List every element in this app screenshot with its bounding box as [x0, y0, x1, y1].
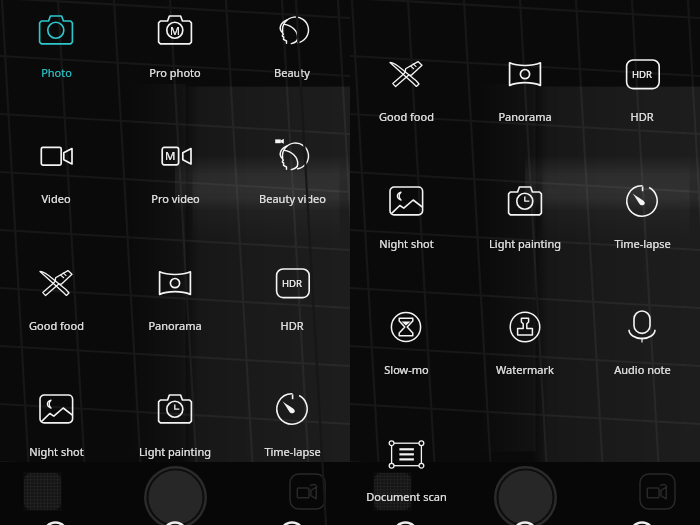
button[interactable]: Gallery [24, 473, 61, 510]
staticText: Photo [41, 65, 72, 80]
button[interactable]: Time-lapse [237, 383, 347, 462]
button[interactable]: HDR [587, 48, 697, 127]
button[interactable]: Switch to video [290, 474, 325, 509]
staticText: Beauty [274, 65, 310, 80]
staticText: Audio note [614, 362, 671, 377]
staticText: Light painting [489, 236, 561, 251]
button[interactable]: HDR [237, 257, 347, 336]
button[interactable]: Gallery [374, 473, 411, 510]
button[interactable]: Light painting [120, 383, 230, 462]
staticText: HDR [632, 68, 652, 81]
staticText: Video [41, 191, 71, 206]
button[interactable]: Beauty [237, 4, 347, 83]
button[interactable]: Good food [351, 48, 461, 127]
staticText: Pro photo [149, 65, 201, 80]
button[interactable]: Photo [1, 4, 111, 83]
button[interactable]: Night shot [1, 383, 111, 462]
staticText: Pro video [151, 191, 200, 206]
button[interactable]: Night shot [351, 175, 461, 254]
button[interactable]: Panorama [470, 48, 580, 127]
button[interactable]: Audio note [587, 301, 697, 380]
staticText: Beauty video [259, 191, 326, 206]
staticText: HDR [630, 109, 654, 124]
button[interactable]: Shutter [494, 466, 557, 525]
staticText: Watermark [496, 362, 554, 377]
staticText: HDR [282, 277, 302, 290]
button[interactable]: Video [1, 130, 111, 209]
button[interactable]: M [120, 4, 230, 83]
staticText: Panorama [498, 109, 552, 124]
staticText: Night shot [29, 444, 84, 459]
button[interactable]: M [120, 130, 230, 209]
button[interactable]: Panorama [120, 257, 230, 336]
button[interactable]: Switch to video [640, 474, 675, 509]
staticText: Panorama [148, 318, 202, 333]
staticText: Good food [29, 318, 84, 333]
staticText: M [165, 148, 176, 164]
staticText: HDR [280, 318, 304, 333]
staticText: Good food [379, 109, 434, 124]
staticText: Document scan [366, 489, 447, 504]
button[interactable]: Beauty video [237, 130, 347, 209]
button[interactable]: Shutter [144, 466, 207, 525]
button[interactable]: Good food [1, 257, 111, 336]
button[interactable]: Time-lapse [587, 175, 697, 254]
staticText: Slow-mo [384, 362, 429, 377]
button[interactable]: Slow-mo [351, 301, 461, 380]
staticText: Time-lapse [264, 444, 321, 459]
button[interactable]: Watermark [470, 301, 580, 380]
staticText: Time-lapse [614, 236, 671, 251]
staticText: Night shot [379, 236, 434, 251]
button[interactable]: Document scan [351, 428, 461, 507]
staticText: M [170, 23, 180, 38]
button[interactable]: Light painting [470, 175, 580, 254]
staticText: Light painting [139, 444, 211, 459]
